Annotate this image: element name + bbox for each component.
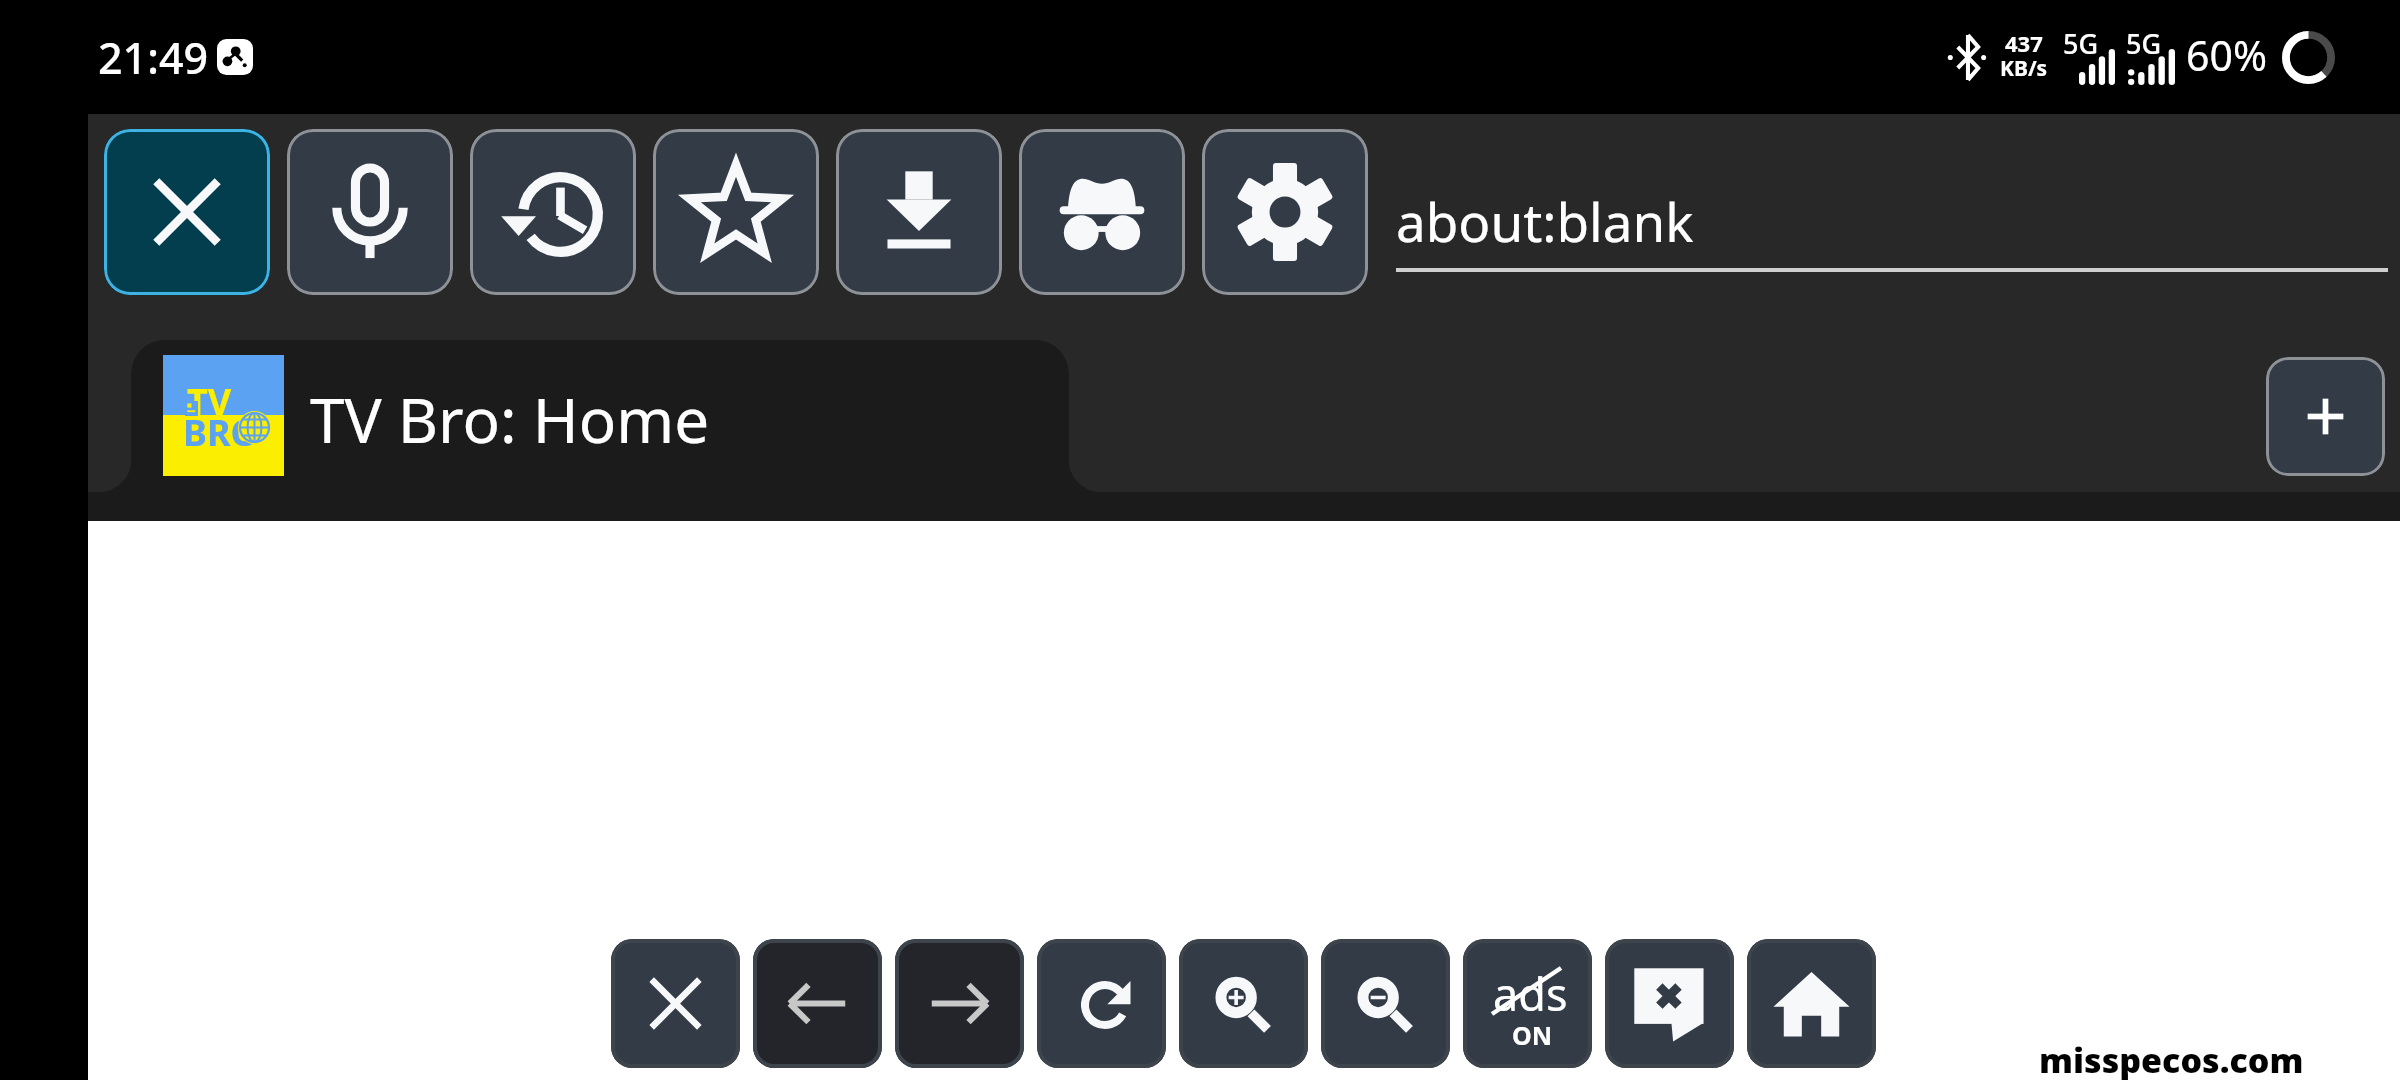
button[interactable]: Zoom in [1179, 939, 1308, 1068]
staticText: about:blank [1396, 185, 1694, 257]
staticText: 437 [2005, 28, 2043, 58]
button[interactable]: Back [753, 939, 882, 1068]
button[interactable]: about:blank [1396, 129, 2388, 296]
button[interactable]: New tab [2266, 357, 2385, 476]
staticText: 5G [2063, 25, 2099, 62]
staticText: TV Bro: Home [310, 377, 710, 461]
button[interactable]: Incognito [1019, 129, 1185, 295]
button[interactable]: Close [611, 939, 740, 1068]
button[interactable]: Voice search [287, 129, 453, 295]
button[interactable]: Settings [1202, 129, 1368, 295]
button[interactable]: Home [1747, 939, 1876, 1068]
button[interactable]: Block popups [1605, 939, 1734, 1068]
staticText: KB/s [2000, 54, 2048, 83]
button[interactable]: Close [104, 129, 270, 295]
staticText: 21:49 [98, 28, 209, 87]
staticText: 60% [2186, 27, 2267, 83]
button[interactable]: Bookmarks [653, 129, 819, 295]
button[interactable]: History [470, 129, 636, 295]
staticText: TV [187, 377, 232, 426]
staticText: BRO [183, 408, 260, 457]
button[interactable]: TV [131, 340, 1069, 521]
button[interactable]: Reload [1037, 939, 1166, 1068]
button[interactable]: Ad blocking on [1463, 939, 1592, 1068]
button[interactable]: Forward [895, 939, 1024, 1068]
staticText: ON [1512, 1018, 1553, 1052]
staticText: misspecos.com [2039, 1037, 2304, 1080]
button[interactable]: Zoom out [1321, 939, 1450, 1068]
staticText: ads [1493, 963, 1568, 1024]
button[interactable]: Downloads [836, 129, 1002, 295]
staticText: 5G [2126, 25, 2162, 62]
